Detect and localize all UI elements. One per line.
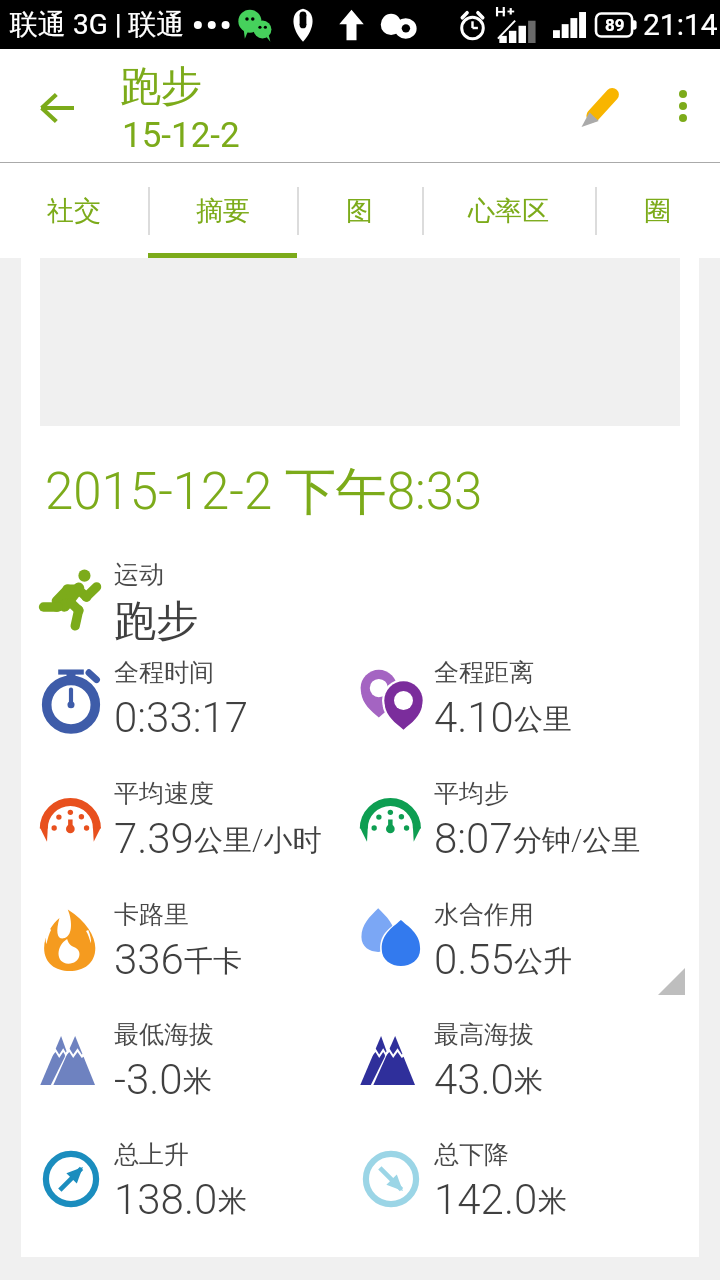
staticText: 142.0 [434,1175,538,1224]
button[interactable]: 心率区 [422,163,595,258]
staticText: 平均速度 [114,778,214,809]
button[interactable]: 最低海拔 [39,1019,357,1119]
staticText: 联通 3G | 联通 [10,7,185,42]
staticText: 43.0 [434,1055,514,1104]
staticText: 运动 [114,559,164,590]
staticText: 米 [218,1183,247,1220]
button[interactable]: 平均步 [359,778,677,878]
staticText: 0:33:17 [114,693,249,742]
staticText: 4.10 [434,693,514,742]
staticText: 0.55 [434,935,514,984]
staticText: 21:14 [643,7,718,42]
staticText: 总下降 [434,1139,509,1170]
button[interactable]: 卡路里 [39,899,357,999]
staticText: 米 [183,1063,212,1100]
staticText: 公里/小时 [194,822,322,859]
button[interactable]: Back [19,51,95,165]
staticText: 水合作用 [434,899,534,930]
staticText: 平均步 [434,778,509,809]
staticText: 336 [114,935,184,984]
button[interactable]: 总下降 [359,1139,677,1239]
staticText: 社交 [47,194,101,228]
staticText: 圈 [644,194,671,228]
staticText: 卡路里 [114,899,189,930]
staticText: 心率区 [468,194,549,228]
staticText: 2015-12-2 下午8:33 [45,460,483,524]
staticText: 跑步 [114,595,198,648]
staticText: -3.0 [114,1055,183,1104]
staticText: 公里 [514,701,572,738]
staticText: 最高海拔 [434,1019,534,1050]
button[interactable]: 全程时间 [39,657,357,757]
staticText: 8:07 [434,814,513,863]
staticText: 全程距离 [434,657,534,688]
staticText: 15-12-2 [122,115,240,156]
staticText: 摘要 [196,194,250,228]
staticText: 89 [605,15,625,35]
button[interactable]: 图 [297,163,422,258]
staticText: 图 [346,194,373,228]
staticText: 米 [538,1183,567,1220]
staticText: 分钟/公里 [513,822,641,859]
staticText: 全程时间 [114,657,214,688]
staticText: 总上升 [114,1139,189,1170]
button[interactable]: 全程距离 [359,657,677,757]
button[interactable]: 平均速度 [39,778,357,878]
button[interactable]: 总上升 [39,1139,357,1239]
button[interactable]: More options [647,49,719,163]
staticText: 千卡 [184,943,242,980]
staticText: 7.39 [114,814,194,863]
button[interactable]: Edit [558,49,642,163]
staticText: 138.0 [114,1175,218,1224]
button[interactable]: 圈 [595,163,720,258]
staticText: 跑步 [120,61,202,113]
button[interactable]: 运动 [39,559,357,659]
button[interactable]: 社交 [0,163,148,258]
button[interactable]: 水合作用 [359,899,677,999]
button[interactable]: 摘要 [148,163,297,258]
button[interactable]: 最高海拔 [359,1019,677,1119]
staticText: 米 [514,1063,543,1100]
staticText: 最低海拔 [114,1019,214,1050]
staticText: 公升 [514,943,572,980]
